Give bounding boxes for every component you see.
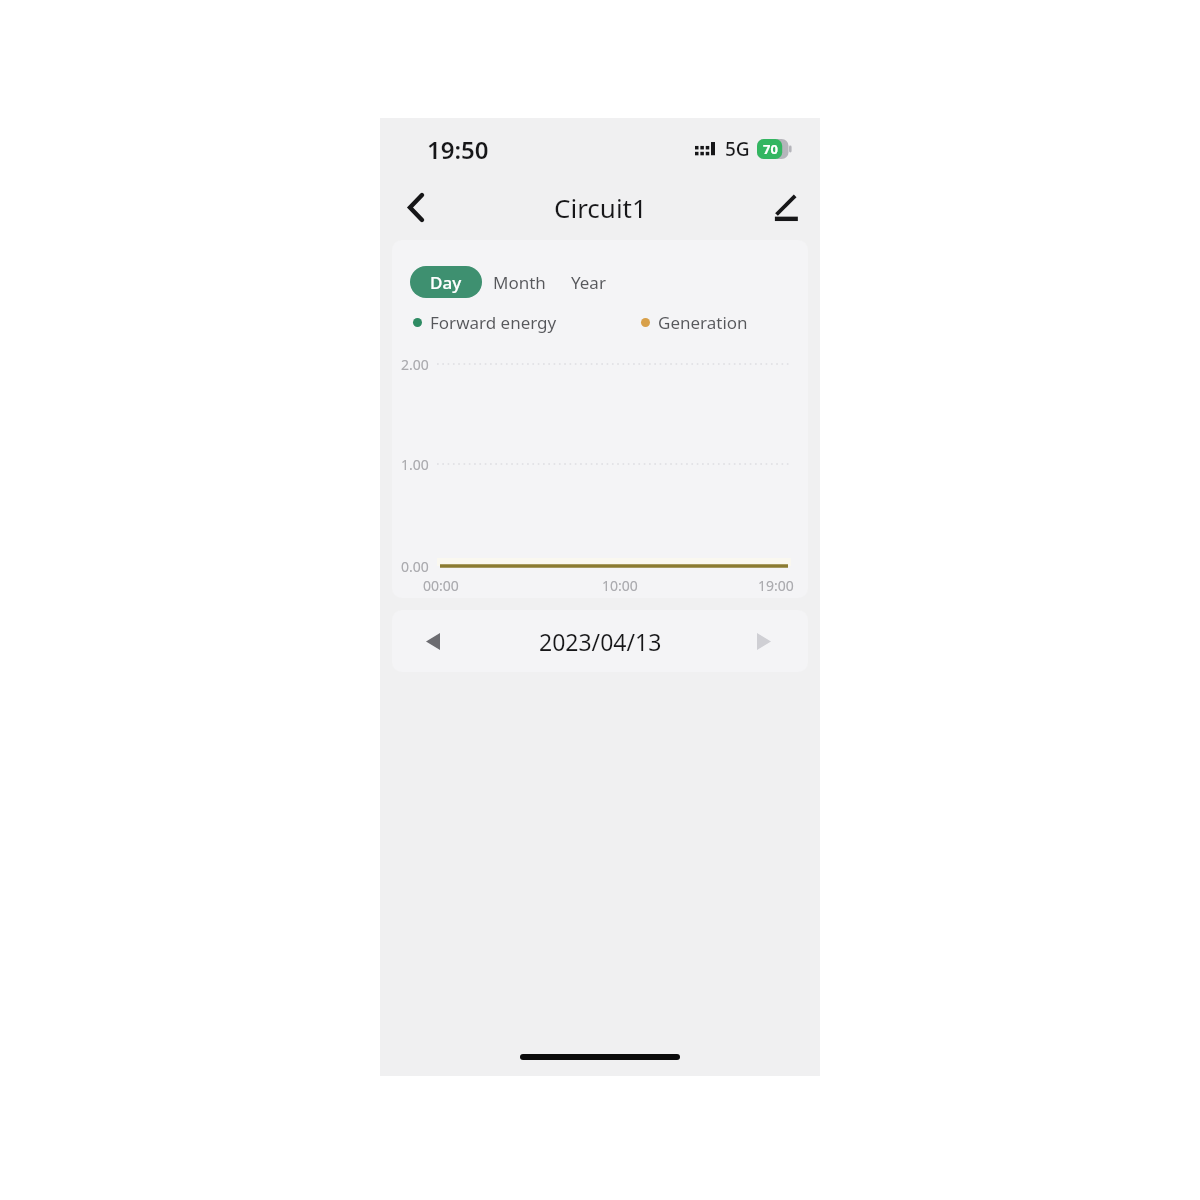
- staticText: 00:00: [423, 576, 459, 595]
- staticText: Day: [430, 271, 462, 294]
- staticText: Circuit1: [554, 190, 647, 225]
- staticText: Forward energy: [430, 311, 557, 334]
- button[interactable]: Month: [482, 266, 556, 298]
- button[interactable]: Year: [556, 266, 620, 298]
- button[interactable]: Back: [390, 182, 440, 232]
- button[interactable]: Edit: [761, 182, 811, 232]
- staticText: Month: [493, 271, 546, 294]
- staticText: Year: [571, 271, 606, 294]
- staticText: 0.00: [401, 557, 429, 576]
- button[interactable]: Previous day: [410, 618, 456, 664]
- staticText: 2.00: [401, 355, 429, 374]
- staticText: 70: [763, 140, 778, 158]
- staticText: 1.00: [401, 455, 429, 474]
- staticText: Generation: [658, 311, 748, 334]
- staticText: 10:00: [602, 576, 638, 595]
- staticText: 5G: [725, 136, 750, 162]
- staticText: 2023/04/13: [539, 626, 662, 657]
- staticText: 19:50: [427, 133, 489, 166]
- button[interactable]: Day: [410, 266, 482, 298]
- button[interactable]: Next day: [741, 618, 787, 664]
- staticText: 19:00: [758, 576, 794, 595]
